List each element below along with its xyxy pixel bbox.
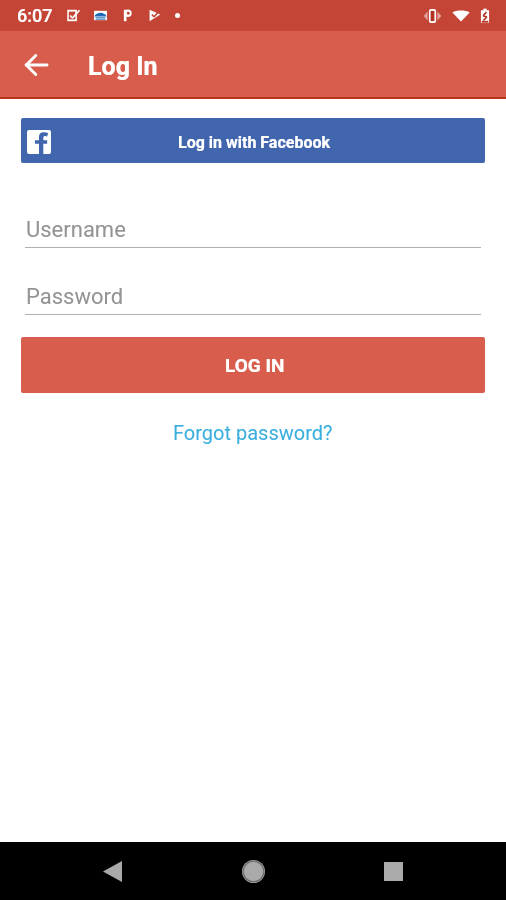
staticText: LOG IN — [225, 354, 285, 376]
button[interactable]: Home — [229, 847, 277, 895]
button[interactable]: Password — [25, 284, 481, 315]
button[interactable]: Forgot password? — [163, 415, 343, 450]
staticText: Forgot password? — [173, 421, 333, 444]
staticText: Log In — [88, 52, 158, 81]
staticText: 6:07 — [17, 5, 53, 26]
button[interactable]: Recent apps — [369, 847, 417, 895]
button[interactable]: Log in with Facebook — [21, 118, 485, 163]
button[interactable]: Back — [88, 847, 136, 895]
button[interactable]: LOG IN — [21, 337, 485, 393]
staticText: Password — [26, 284, 124, 310]
staticText: Username — [26, 217, 126, 243]
staticText: Log in with Facebook — [178, 133, 330, 152]
button[interactable]: Back — [13, 42, 58, 87]
button[interactable]: Username — [25, 217, 481, 248]
